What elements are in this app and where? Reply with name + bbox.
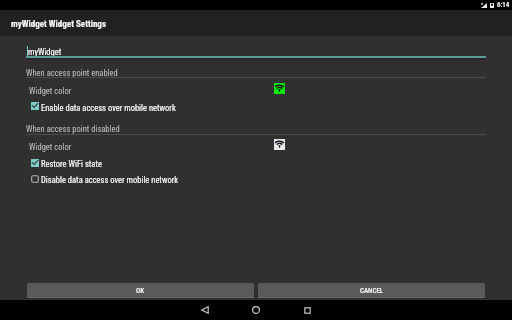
button[interactable]	[26, 83, 486, 96]
button[interactable]: Home	[230, 300, 281, 320]
button[interactable]	[26, 157, 486, 169]
staticText: Widget color	[29, 142, 72, 152]
button[interactable]: CANCEL	[258, 283, 485, 298]
button[interactable]	[26, 173, 486, 185]
staticText: Widget color	[29, 86, 72, 96]
staticText: 6:14	[497, 1, 510, 9]
button[interactable]	[26, 42, 486, 59]
staticText: myWidget Widget Settings	[11, 19, 106, 30]
button[interactable]	[26, 139, 486, 152]
button[interactable]: Back	[179, 300, 230, 320]
staticText: myWidget	[28, 47, 62, 57]
button[interactable]: Recents	[282, 300, 333, 320]
staticText: CANCEL	[360, 287, 384, 295]
button[interactable]: OK	[27, 283, 254, 298]
staticText: Enable data access over mobile network	[41, 103, 176, 113]
staticText: Disable data access over mobile network	[41, 175, 179, 185]
staticText: When access point disabled	[26, 124, 120, 134]
button[interactable]	[26, 100, 486, 112]
staticText: Restore WiFi state	[41, 159, 102, 169]
staticText: OK	[136, 287, 145, 295]
staticText: When access point enabled	[26, 68, 118, 78]
